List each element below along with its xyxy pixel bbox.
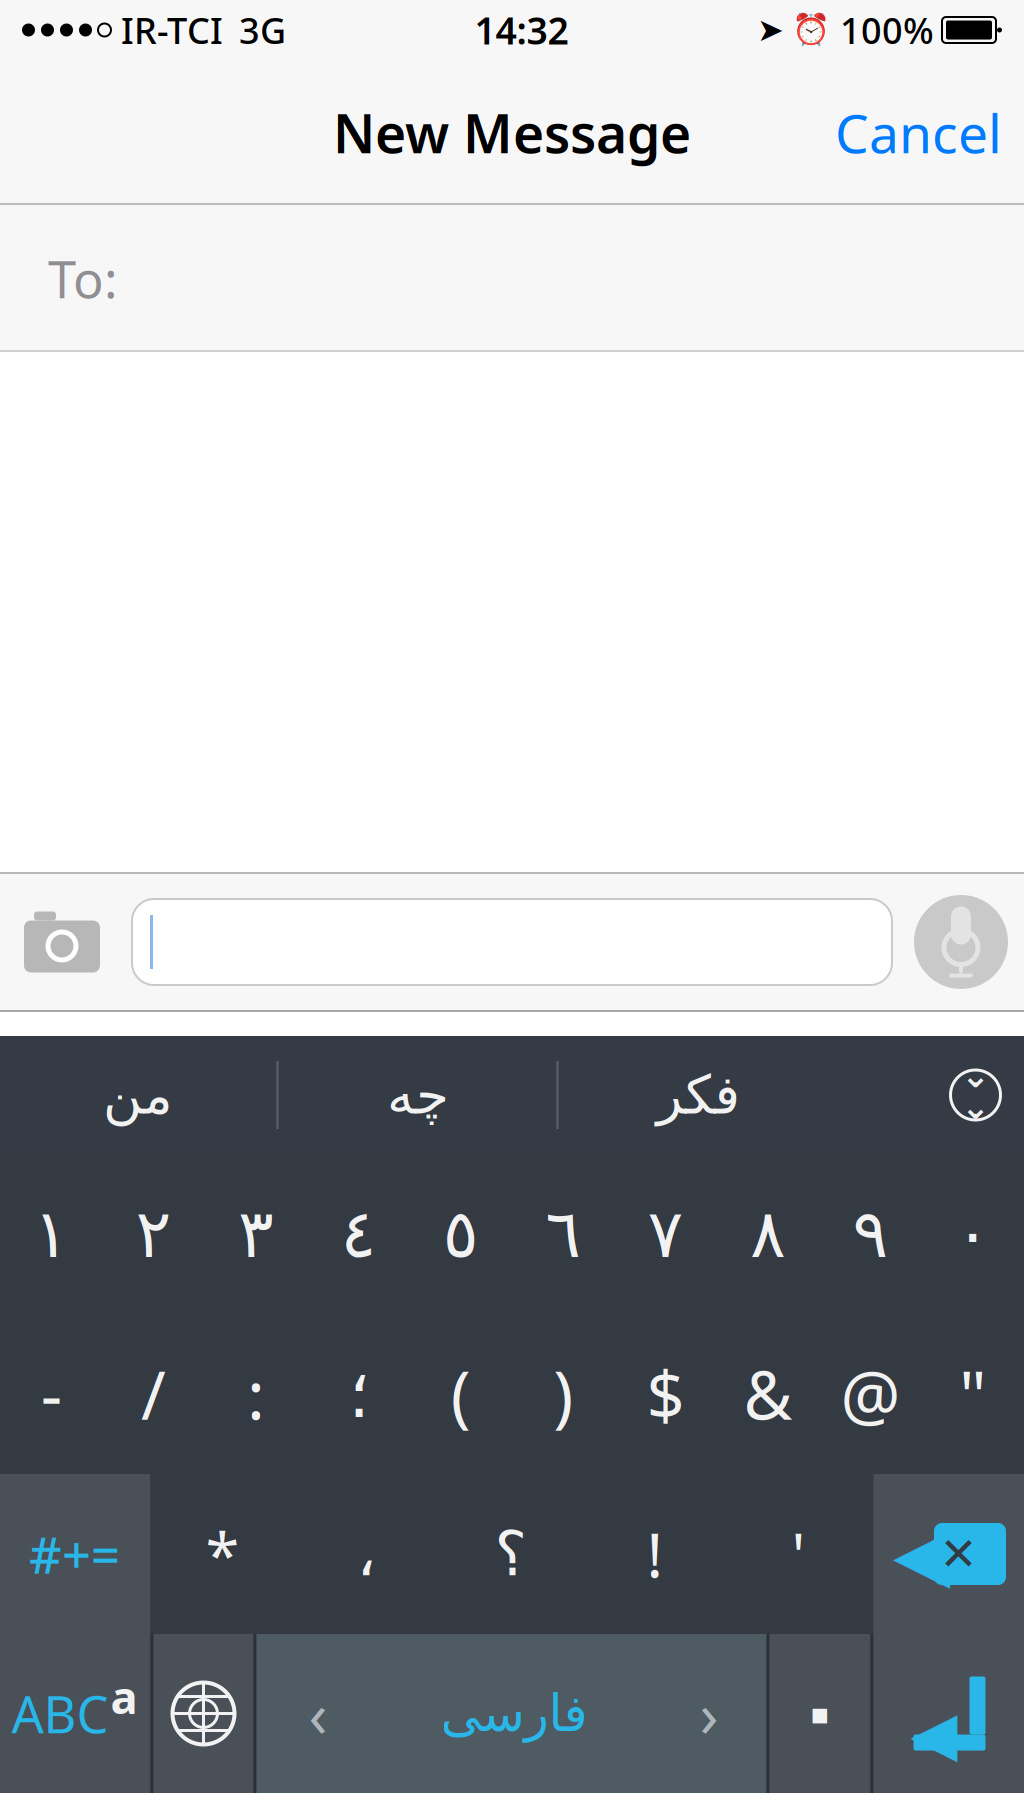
button[interactable]: Dictate bbox=[914, 895, 1008, 989]
button[interactable]: To: bbox=[0, 205, 1024, 352]
button[interactable]: ٦ bbox=[512, 1154, 614, 1314]
button[interactable]: ! bbox=[582, 1474, 726, 1634]
staticText: ) bbox=[553, 1350, 573, 1438]
button[interactable]: Return bbox=[873, 1634, 1024, 1793]
button[interactable]: Period bbox=[769, 1634, 870, 1793]
staticText: ⏰ bbox=[792, 12, 830, 47]
staticText: Cancel bbox=[835, 97, 1002, 168]
staticText: ؛ bbox=[348, 1356, 369, 1432]
button[interactable]: ٤ bbox=[307, 1154, 410, 1314]
staticText: To: bbox=[48, 245, 118, 312]
staticText: ' bbox=[791, 1513, 805, 1595]
button[interactable]: $ bbox=[614, 1314, 717, 1474]
button[interactable]: ) bbox=[512, 1314, 614, 1474]
button[interactable]: Delete bbox=[873, 1474, 1024, 1634]
button[interactable]: ( bbox=[410, 1314, 512, 1474]
button[interactable]: Next keyboard bbox=[153, 1634, 253, 1793]
button[interactable]: ٧ bbox=[614, 1154, 717, 1314]
staticText: * bbox=[205, 1513, 239, 1595]
button[interactable]: ٠ bbox=[922, 1154, 1024, 1314]
button[interactable]: من bbox=[0, 1036, 276, 1154]
button[interactable]: ' bbox=[726, 1474, 870, 1634]
button[interactable]: ٣ bbox=[205, 1154, 307, 1314]
staticText: & bbox=[743, 1350, 792, 1438]
button[interactable]: ؛ bbox=[307, 1314, 410, 1474]
staticText: ١ bbox=[33, 1196, 69, 1272]
staticText: 3G bbox=[239, 6, 286, 54]
button[interactable]: & bbox=[717, 1314, 819, 1474]
staticText: ( bbox=[451, 1350, 471, 1438]
staticText: New Message bbox=[333, 97, 691, 168]
button[interactable]: #+= bbox=[0, 1474, 150, 1634]
button[interactable]: Take photo bbox=[14, 894, 110, 990]
button[interactable]: Switch to Latin keyboard bbox=[0, 1634, 150, 1793]
button[interactable]: ٩ bbox=[819, 1154, 922, 1314]
staticText: ٧ bbox=[648, 1196, 684, 1272]
staticText: ، bbox=[356, 1519, 376, 1589]
staticText: ٢ bbox=[136, 1196, 172, 1272]
staticText: فارسی bbox=[440, 1685, 587, 1742]
staticText: : bbox=[247, 1350, 265, 1438]
button[interactable]: : bbox=[205, 1314, 307, 1474]
staticText: 100% bbox=[840, 6, 934, 54]
staticText: ⌄ bbox=[961, 1056, 990, 1095]
button[interactable]: ١ bbox=[0, 1154, 102, 1314]
staticText: #+= bbox=[29, 1520, 120, 1588]
button[interactable]: Hide keyboard bbox=[933, 1036, 1017, 1154]
staticText: ٨ bbox=[750, 1196, 786, 1272]
button[interactable]: / bbox=[102, 1314, 205, 1474]
button[interactable]: Space bbox=[256, 1634, 766, 1793]
staticText: › bbox=[699, 1673, 718, 1754]
staticText: چه bbox=[386, 1065, 448, 1125]
staticText: a bbox=[110, 1666, 137, 1727]
staticText: IR-TCI bbox=[121, 6, 223, 54]
staticText: ‹ bbox=[308, 1673, 327, 1754]
staticText: ➤ bbox=[757, 12, 784, 48]
staticText: ◀ bbox=[910, 1699, 957, 1768]
staticText: ٣ bbox=[238, 1196, 274, 1272]
button[interactable]: - bbox=[0, 1314, 102, 1474]
staticText: 14:32 bbox=[474, 5, 568, 55]
staticText: ▪ bbox=[810, 1697, 830, 1730]
staticText: ٦ bbox=[545, 1196, 581, 1272]
button[interactable]: فکر bbox=[558, 1036, 836, 1154]
button[interactable]: ٨ bbox=[717, 1154, 819, 1314]
staticText: " bbox=[959, 1350, 986, 1438]
staticText: ! bbox=[646, 1513, 662, 1595]
staticText: ABC bbox=[11, 1680, 108, 1747]
button[interactable]: @ bbox=[819, 1314, 922, 1474]
staticText: ٠ bbox=[955, 1196, 991, 1272]
staticText: $ bbox=[647, 1350, 685, 1438]
button[interactable]: " bbox=[922, 1314, 1024, 1474]
staticText: ٤ bbox=[340, 1196, 376, 1272]
staticText: @ bbox=[840, 1350, 900, 1438]
staticText: ⌄ bbox=[961, 1087, 990, 1126]
button[interactable]: ٢ bbox=[102, 1154, 205, 1314]
button[interactable]: چه bbox=[278, 1036, 556, 1154]
button[interactable]: * bbox=[150, 1474, 294, 1634]
staticText: - bbox=[41, 1350, 62, 1438]
button[interactable]: Cancel bbox=[813, 79, 1024, 186]
button[interactable]: ، bbox=[294, 1474, 438, 1634]
button[interactable] bbox=[132, 899, 892, 985]
staticText: ٩ bbox=[852, 1196, 888, 1272]
staticText: ؟ bbox=[494, 1519, 527, 1589]
staticText: فکر bbox=[656, 1065, 739, 1125]
button[interactable]: ٥ bbox=[410, 1154, 512, 1314]
staticText: ✕ bbox=[939, 1528, 977, 1580]
staticText: من bbox=[102, 1065, 172, 1125]
button[interactable]: ؟ bbox=[438, 1474, 582, 1634]
staticText: ٥ bbox=[443, 1196, 479, 1272]
staticText: / bbox=[141, 1350, 166, 1438]
staticText: ◀ bbox=[893, 1512, 950, 1596]
